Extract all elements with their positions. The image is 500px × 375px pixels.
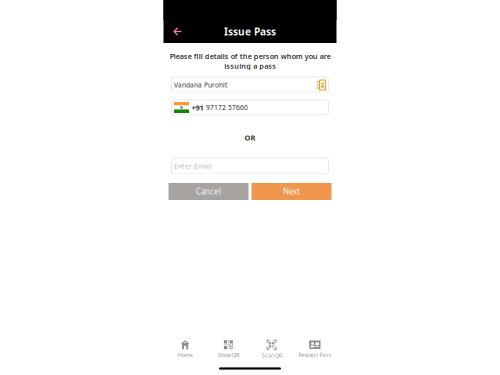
button[interactable]: Request Pass <box>293 340 336 358</box>
staticText: Next <box>283 186 300 197</box>
button[interactable]: Choose from contacts <box>316 79 326 90</box>
staticText: 97172 57660 <box>206 103 248 112</box>
staticText: Please fill details of the person whom y… <box>169 51 330 71</box>
staticText: OR <box>244 132 255 143</box>
button[interactable]: Back <box>163 21 188 41</box>
staticText: Scan QR <box>262 352 282 359</box>
staticText: Issue Pass <box>224 25 276 38</box>
button[interactable]: Show QR <box>207 340 250 358</box>
staticText: Vandana Purohit <box>174 81 227 89</box>
staticText: Request Pass <box>298 351 331 358</box>
staticText: Home <box>178 351 193 358</box>
button[interactable]: Home <box>163 340 207 358</box>
staticText: Show QR <box>218 351 239 358</box>
button[interactable]: Scan QR <box>250 340 293 359</box>
staticText: +91 <box>191 102 203 113</box>
staticText: Enter Email <box>174 161 212 171</box>
button[interactable]: Next <box>251 183 331 200</box>
staticText: Cancel <box>196 186 221 197</box>
button[interactable]: Cancel <box>168 183 248 200</box>
